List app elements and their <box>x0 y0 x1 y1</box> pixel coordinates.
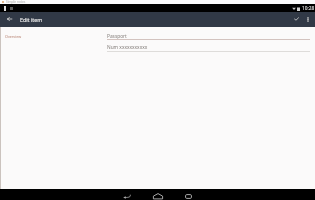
button[interactable]: Recent apps <box>173 191 204 200</box>
button[interactable]: Home <box>142 191 173 200</box>
staticText: Overview <box>5 34 22 39</box>
button[interactable]: Passport <box>107 33 310 41</box>
button[interactable]: Num xxxxxxxxxxx <box>107 44 310 52</box>
button[interactable]: Back <box>111 191 142 200</box>
button[interactable]: More options <box>302 12 313 26</box>
button[interactable]: Save <box>290 12 302 26</box>
staticText: Edit item <box>20 16 43 23</box>
staticText: Passport <box>107 33 127 40</box>
staticText: Num xxxxxxxxxxx <box>107 44 148 51</box>
button[interactable]: Navigate up <box>4 13 15 24</box>
staticText: Simple notes <box>6 0 26 4</box>
staticText: 10:28 <box>302 5 315 12</box>
